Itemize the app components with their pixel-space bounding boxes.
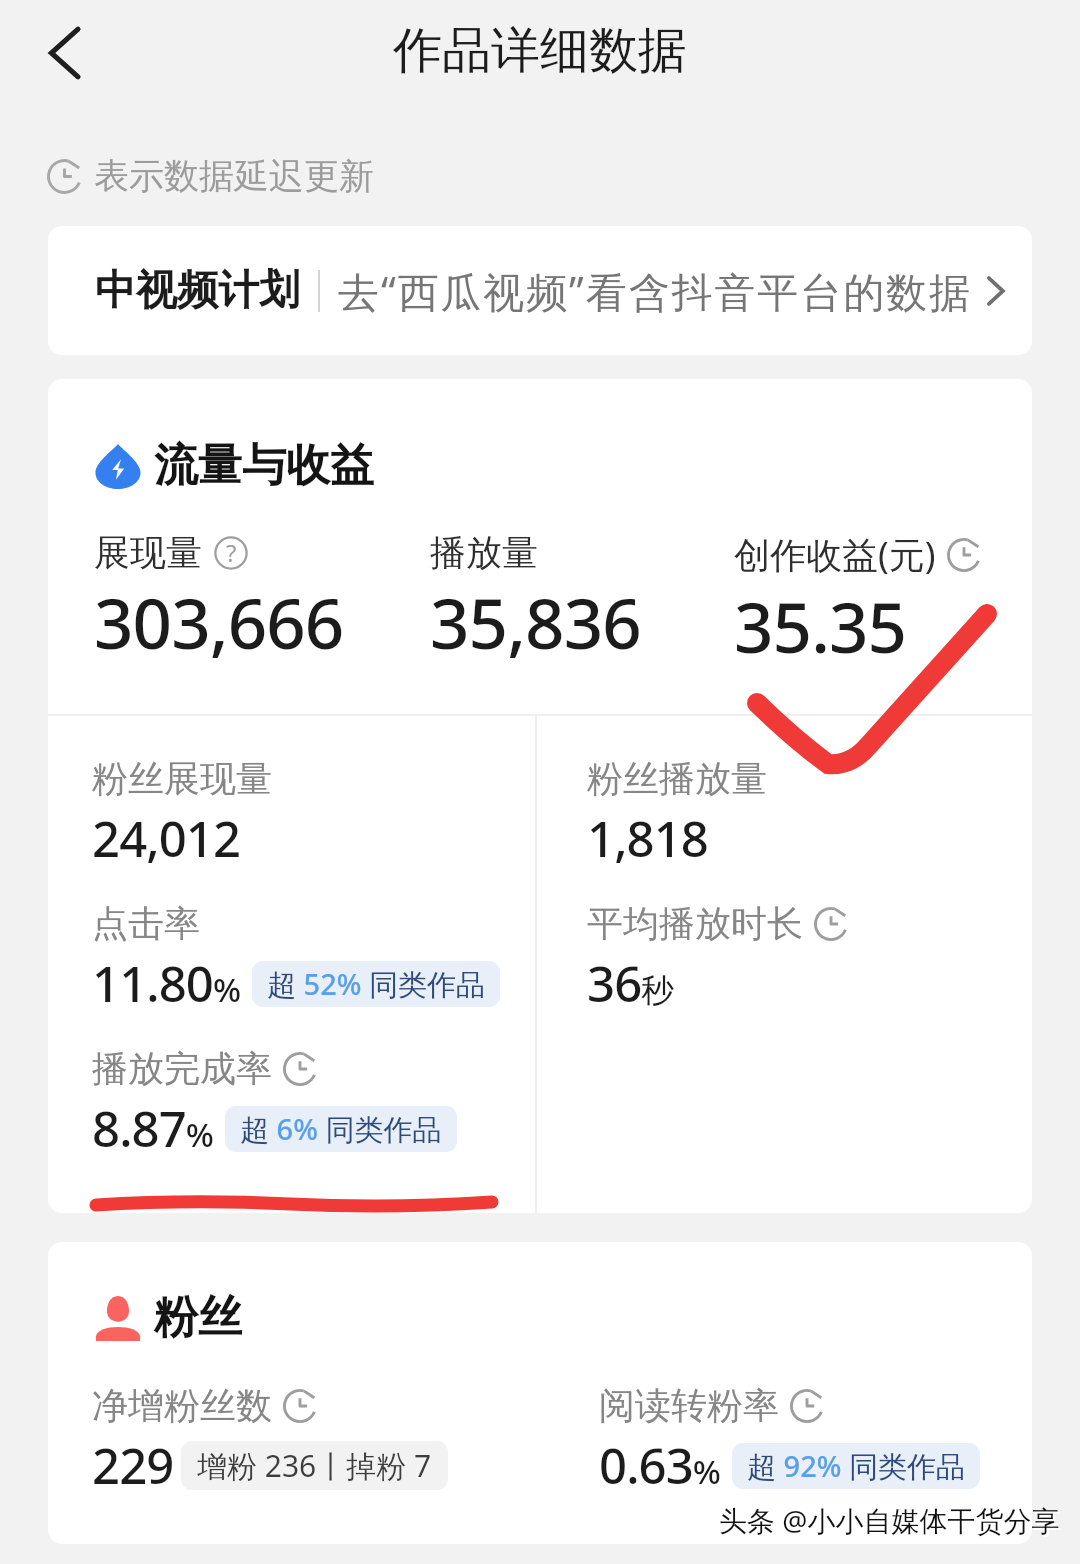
button[interactable]: 中视频计划	[48, 226, 1032, 355]
staticText: 表示数据延迟更新	[94, 154, 374, 198]
staticText: 8.87%	[92, 1095, 214, 1162]
staticText: 头条 @小小自媒体干货分享	[721, 1503, 1062, 1541]
staticText: 229	[92, 1432, 174, 1499]
staticText: 粉丝展现量	[92, 756, 272, 801]
staticText: 303,666	[94, 575, 344, 669]
staticText: 播放量	[430, 530, 538, 575]
staticText: 11.80%	[92, 950, 241, 1017]
staticText: 展现量	[94, 530, 202, 575]
staticText: 增粉 236丨掉粉 7	[197, 1445, 432, 1486]
staticText: 播放完成率	[92, 1046, 272, 1091]
staticText: 35,836	[430, 575, 641, 669]
staticText: 35.35	[734, 579, 907, 673]
staticText: 净增粉丝数	[92, 1383, 272, 1428]
staticText: 平均播放时长	[587, 901, 803, 946]
staticText: 36秒	[587, 950, 674, 1017]
staticText: 创作收益(元)	[734, 530, 936, 579]
staticText: 超 52% 同类作品	[267, 964, 485, 1004]
staticText: 点击率	[92, 901, 200, 946]
button[interactable]: About impressions	[214, 536, 248, 570]
staticText: 作品详细数据	[393, 20, 687, 82]
staticText: 粉丝	[154, 1290, 242, 1345]
staticText: 头条 @小小自媒体干货分享	[719, 1501, 1060, 1539]
staticText: 中视频计划	[95, 265, 300, 317]
staticText: 粉丝播放量	[587, 756, 767, 801]
staticText: 0.63%	[599, 1432, 721, 1499]
staticText: 去“西瓜视频”看含抖音平台的数据	[338, 263, 972, 319]
staticText: 1,818	[587, 805, 708, 872]
staticText: 24,012	[92, 805, 241, 872]
staticText: ?	[226, 536, 237, 569]
staticText: 超 6% 同类作品	[240, 1109, 442, 1149]
button[interactable]: 播放量	[430, 530, 734, 669]
staticText: 阅读转粉率	[599, 1383, 779, 1428]
staticText: 超 92% 同类作品	[747, 1446, 965, 1486]
staticText: 流量与收益	[154, 438, 374, 493]
button[interactable]: 创作收益(元)	[734, 530, 1032, 673]
button[interactable]: Back	[22, 10, 108, 96]
button[interactable]: 展现量	[94, 530, 430, 669]
